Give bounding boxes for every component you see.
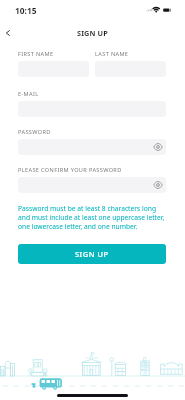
button[interactable]: SIGN UP	[18, 244, 166, 264]
button[interactable]: Show password	[18, 139, 166, 155]
staticText: PASSWORD	[18, 128, 51, 136]
staticText: PLEASE CONFIRM YOUR PASSWORD	[18, 166, 122, 174]
staticText: LAST NAME	[95, 50, 129, 58]
staticText: SIGN UP	[77, 28, 108, 38]
staticText: FIRST NAME	[18, 50, 54, 58]
button[interactable]: Show password	[152, 141, 164, 153]
button[interactable]: Show password	[18, 177, 166, 193]
staticText: E-MAIL	[18, 90, 39, 98]
staticText: 10:15	[15, 5, 37, 16]
staticText: Password must be at least 8 characters l…	[18, 204, 169, 231]
staticText: SIGN UP	[75, 249, 109, 259]
button[interactable]: Back	[0, 24, 17, 42]
button[interactable]: Show password	[152, 179, 164, 191]
